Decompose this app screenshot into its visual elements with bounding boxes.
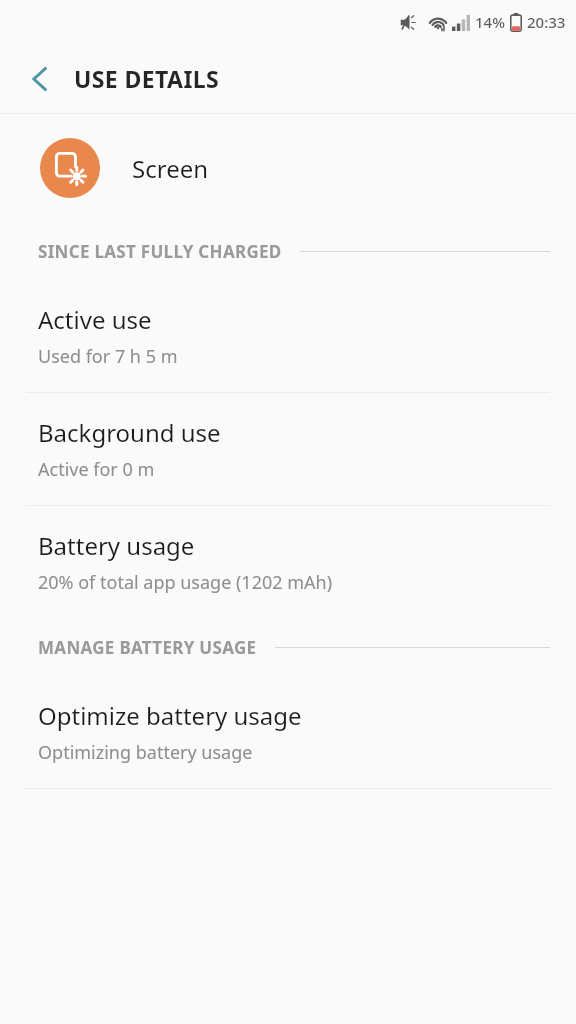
staticText: Optimize battery usage [38, 699, 302, 732]
staticText: MANAGE BATTERY USAGE [38, 636, 257, 659]
button[interactable]: Background use [0, 393, 576, 505]
staticText: Screen [132, 152, 209, 185]
button[interactable]: Active use [0, 280, 576, 392]
button[interactable]: Battery usage [0, 506, 576, 618]
staticText: 20% of total app usage (1202 mAh) [38, 570, 333, 595]
staticText: Battery usage [38, 529, 195, 562]
staticText: USE DETAILS [74, 63, 220, 94]
staticText: 14% [475, 12, 505, 32]
staticText: 20:33 [527, 12, 566, 32]
staticText: Used for 7 h 5 m [38, 344, 178, 369]
staticText: Optimizing battery usage [38, 740, 253, 765]
button[interactable]: Back [14, 53, 66, 105]
button[interactable]: Optimize battery usage [0, 676, 576, 788]
staticText: Active for 0 m [38, 457, 155, 482]
staticText: SINCE LAST FULLY CHARGED [38, 240, 282, 263]
staticText: Background use [38, 416, 221, 449]
staticText: Active use [38, 303, 152, 336]
button[interactable]: Screen [0, 114, 576, 222]
